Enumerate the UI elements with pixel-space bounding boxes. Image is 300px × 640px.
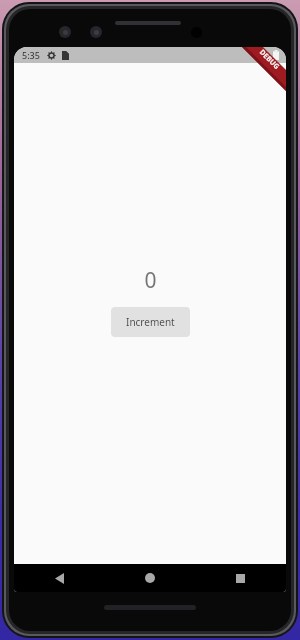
staticText: 5:35 bbox=[22, 49, 40, 61]
button[interactable]: Increment bbox=[111, 307, 190, 337]
button[interactable]: Recent apps bbox=[195, 564, 286, 592]
button[interactable]: Back bbox=[14, 564, 104, 592]
staticText: 0 bbox=[144, 266, 157, 295]
staticText: Increment bbox=[126, 315, 175, 329]
button[interactable]: Home bbox=[104, 564, 195, 592]
staticText: DEBUG bbox=[257, 48, 282, 72]
